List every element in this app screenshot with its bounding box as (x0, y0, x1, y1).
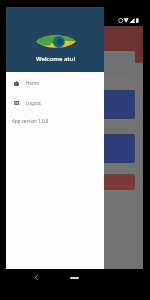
button[interactable] (14, 174, 135, 190)
staticText: App version 1.0.0 (12, 118, 49, 124)
button[interactable]: Info (14, 134, 135, 163)
staticText: Logout (26, 100, 41, 106)
button[interactable]: Feedback (14, 90, 135, 119)
staticText: Welcome atul (36, 55, 76, 63)
other: Back (34, 275, 39, 280)
button[interactable]: Home (6, 73, 104, 93)
other: Home (70, 277, 79, 279)
button[interactable]: Logout (6, 93, 104, 113)
staticText: Home (26, 80, 39, 86)
